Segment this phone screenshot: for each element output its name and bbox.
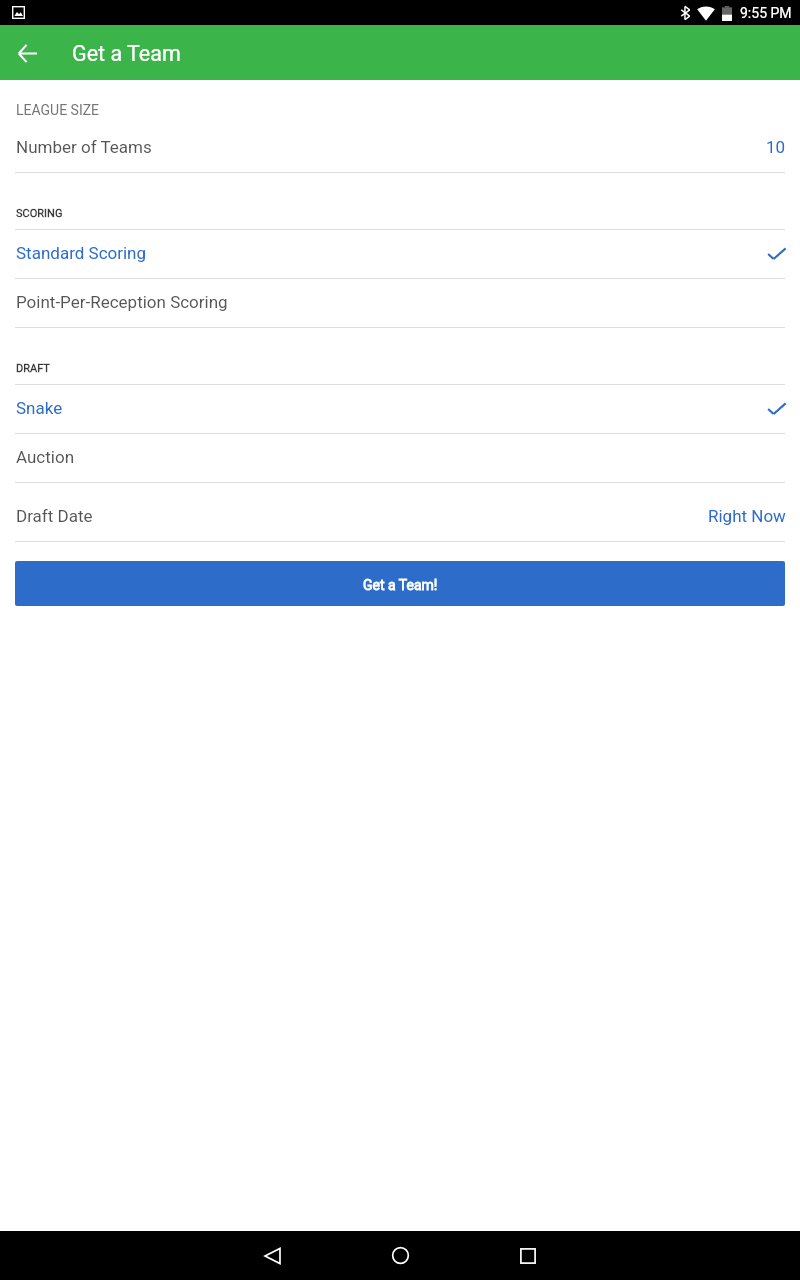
staticText: 10 <box>766 137 786 157</box>
staticText: Point-Per-Reception Scoring <box>16 292 228 312</box>
staticText: Get a Team <box>72 41 181 66</box>
staticText: DRAFT <box>16 362 50 375</box>
button[interactable]: Get a Team! <box>15 561 785 606</box>
button[interactable]: Back <box>0 26 54 80</box>
other: Bluetooth on <box>681 6 690 20</box>
staticText: SCORING <box>16 207 63 220</box>
button[interactable] <box>0 385 800 433</box>
button[interactable]: Back <box>256 1231 288 1280</box>
other: Wi-Fi signal full <box>697 6 715 21</box>
button[interactable]: Home <box>384 1231 416 1280</box>
staticText: Get a Team! <box>363 577 438 593</box>
button[interactable] <box>0 279 800 327</box>
other: Screenshot captured <box>12 6 25 19</box>
staticText: 9:55 PM <box>740 5 792 21</box>
staticText: Number of Teams <box>16 137 152 157</box>
button[interactable] <box>0 230 800 278</box>
staticText: Draft Date <box>16 506 93 526</box>
button[interactable] <box>0 483 800 541</box>
other: Battery <box>722 6 732 21</box>
button[interactable] <box>0 434 800 482</box>
staticText: Standard Scoring <box>16 243 147 263</box>
button[interactable] <box>0 123 800 172</box>
other: Selected <box>767 402 786 416</box>
staticText: Snake <box>16 398 63 418</box>
staticText: Auction <box>16 447 75 467</box>
button[interactable]: Recent apps <box>512 1231 544 1280</box>
staticText: Right Now <box>708 506 786 526</box>
staticText: LEAGUE SIZE <box>16 102 100 118</box>
other: Selected <box>767 247 786 261</box>
